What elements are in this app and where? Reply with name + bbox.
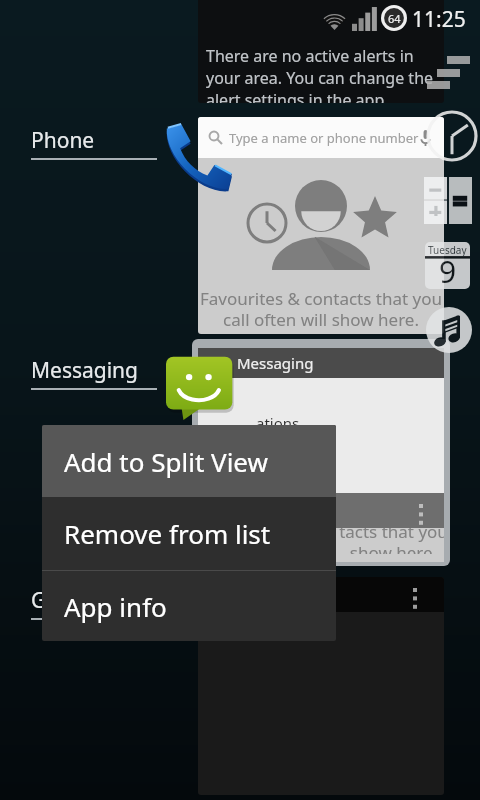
button[interactable]: Type a name or phone number [198,117,444,334]
staticText: 64 [388,11,401,26]
staticText: ations. [256,413,304,433]
staticText: Remove from list [64,516,271,551]
staticText: Messaging [237,353,314,373]
staticText: App info [64,589,167,624]
staticText: 11:25 [412,5,466,34]
button[interactable]: App info [42,571,336,641]
staticText: tacts that you show here. [339,528,444,554]
button[interactable]: More options [198,577,444,795]
button[interactable]: Messaging [192,339,450,566]
staticText: Type a name or phone number [229,129,419,147]
button[interactable]: Phone [164,123,234,193]
button[interactable]: More options [404,584,426,606]
staticText: Favourites & contacts that you call ofte… [198,287,444,331]
staticText: G [31,586,47,615]
staticText: There are no active alerts in your area.… [206,45,434,103]
staticText: 9 [439,251,457,292]
button[interactable]: Add to Split View [42,425,336,497]
staticText: Messaging [31,356,139,385]
button[interactable]: There are no active alerts in your area.… [198,0,444,103]
staticText: Phone [31,126,95,155]
staticText: Add to Split View [64,444,268,479]
staticText: Tuesday [428,243,467,257]
button[interactable]: Messaging [166,353,233,420]
button[interactable]: More options [410,500,432,522]
button[interactable]: Remove from list [42,497,336,570]
